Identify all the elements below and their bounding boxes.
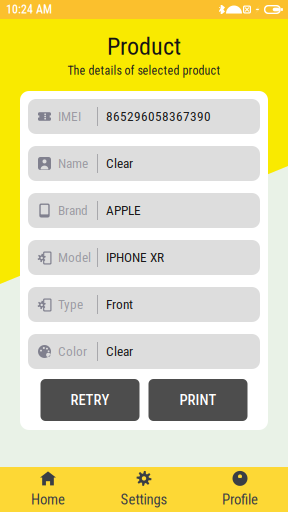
staticText: 865296058367390 [106,109,211,124]
staticText: Profile [222,491,258,508]
staticText: The details of selected product [67,63,220,78]
staticText: Clear [106,344,133,359]
button[interactable]: Profile [192,467,288,512]
staticText: Front [106,297,133,312]
staticText: IMEI [58,109,81,124]
staticText: Color [58,344,87,359]
staticText: 10:24 AM [6,2,52,17]
staticText: RETRY [70,391,109,409]
staticText: Clear [106,156,133,171]
button[interactable]: Settings [96,467,192,512]
button[interactable]: Home [0,467,96,512]
staticText: APPLE [106,203,141,218]
staticText: Product [107,32,181,60]
staticText: Brand [58,203,88,218]
staticText: IPHONE XR [106,250,164,265]
staticText: Name [58,156,88,171]
staticText: Type [58,297,83,312]
staticText: Home [31,491,65,508]
button[interactable]: RETRY [40,379,139,421]
button[interactable]: PRINT [148,379,247,421]
staticText: Settings [120,491,167,508]
staticText: Model [58,250,91,265]
staticText: PRINT [179,391,216,409]
